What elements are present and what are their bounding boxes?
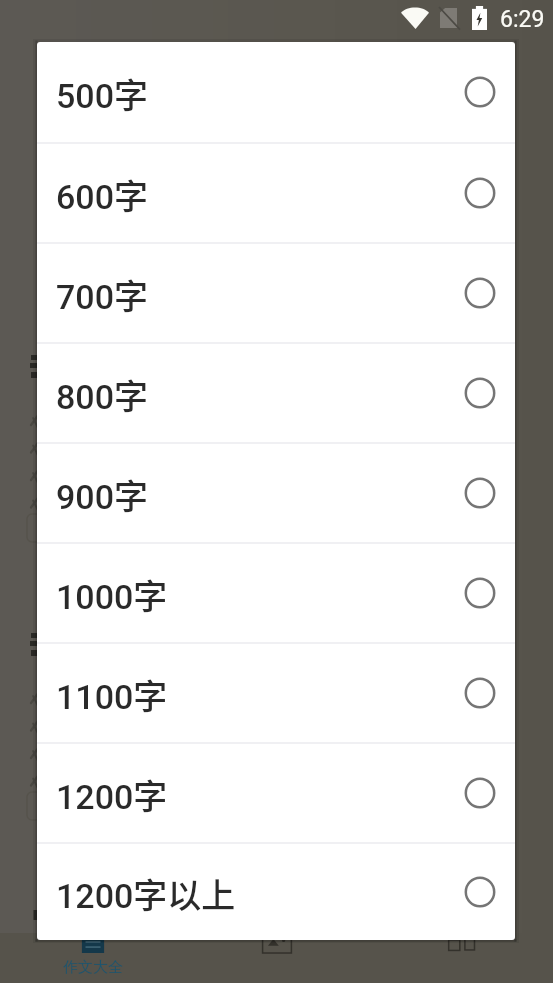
- staticText: 700字: [56, 270, 148, 319]
- other: WiFi: [401, 7, 429, 29]
- staticText: 600字: [56, 170, 148, 219]
- staticText: 800字: [56, 370, 148, 419]
- button[interactable]: 1200字: [37, 744, 515, 842]
- staticText: 1100字: [56, 670, 168, 719]
- button[interactable]: Nav: [185, 933, 369, 983]
- staticText: 900字: [56, 470, 148, 519]
- button[interactable]: 500字: [37, 42, 515, 142]
- staticText: 500字: [56, 69, 148, 118]
- button[interactable]: Nav: [0, 933, 185, 983]
- button[interactable]: 900字: [37, 444, 515, 542]
- button[interactable]: 600字: [37, 144, 515, 242]
- button[interactable]: 1200字以上: [37, 844, 515, 940]
- staticText: 作文大全: [63, 958, 123, 977]
- button[interactable]: 1100字: [37, 644, 515, 742]
- button[interactable]: 800字: [37, 344, 515, 442]
- staticText: 6:29: [500, 6, 545, 33]
- staticText: 1200字: [56, 770, 168, 819]
- button[interactable]: Nav: [369, 933, 553, 983]
- staticText: 1000字: [56, 570, 168, 619]
- button[interactable]: 1000字: [37, 544, 515, 642]
- button[interactable]: 700字: [37, 244, 515, 342]
- staticText: 1200字以上: [56, 869, 236, 918]
